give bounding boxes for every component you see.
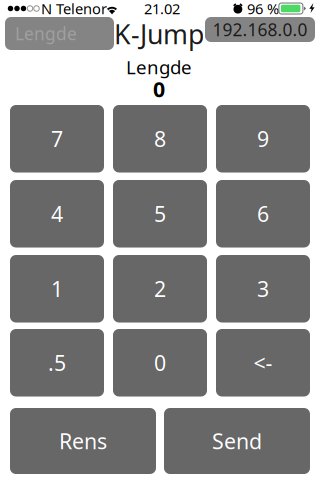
staticText: 5 (154, 200, 166, 228)
button[interactable]: Lengde (5, 17, 114, 50)
staticText: Lengde (15, 22, 77, 45)
staticText: 21.02 (144, 0, 180, 18)
button[interactable]: 8 (113, 105, 207, 172)
staticText: 7 (51, 125, 63, 153)
staticText: Rens (59, 427, 107, 455)
staticText: Lengde (126, 55, 192, 79)
button[interactable]: 192.168.0.0 (205, 17, 315, 42)
staticText: 0 (153, 75, 165, 103)
button[interactable]: 9 (216, 105, 310, 172)
button[interactable]: 7 (10, 105, 104, 172)
button[interactable]: .5 (10, 329, 104, 396)
staticText: 0 (154, 349, 166, 377)
staticText: <- (253, 349, 272, 377)
staticText: 4 (51, 200, 63, 228)
staticText: 3 (257, 275, 269, 303)
staticText: 2 (154, 275, 166, 303)
button[interactable]: 4 (10, 180, 104, 247)
staticText: Send (212, 427, 262, 455)
staticText: 8 (154, 125, 166, 153)
staticText: N Telenor (41, 0, 107, 18)
button[interactable]: 6 (216, 180, 310, 247)
button[interactable]: 1 (10, 255, 104, 322)
staticText: 1 (51, 275, 63, 303)
staticText: 192.168.0.0 (212, 18, 307, 41)
button[interactable]: Rens (10, 408, 156, 474)
staticText: 96 % (247, 0, 279, 18)
staticText: 9 (257, 125, 269, 153)
staticText: .5 (48, 349, 66, 377)
staticText: K-Jump (114, 16, 204, 52)
button[interactable]: 0 (113, 329, 207, 396)
button[interactable]: 3 (216, 255, 310, 322)
button[interactable]: 5 (113, 180, 207, 247)
staticText: 6 (257, 200, 269, 228)
button[interactable]: <- (216, 329, 310, 396)
button[interactable]: 2 (113, 255, 207, 322)
button[interactable]: Send (164, 408, 310, 474)
